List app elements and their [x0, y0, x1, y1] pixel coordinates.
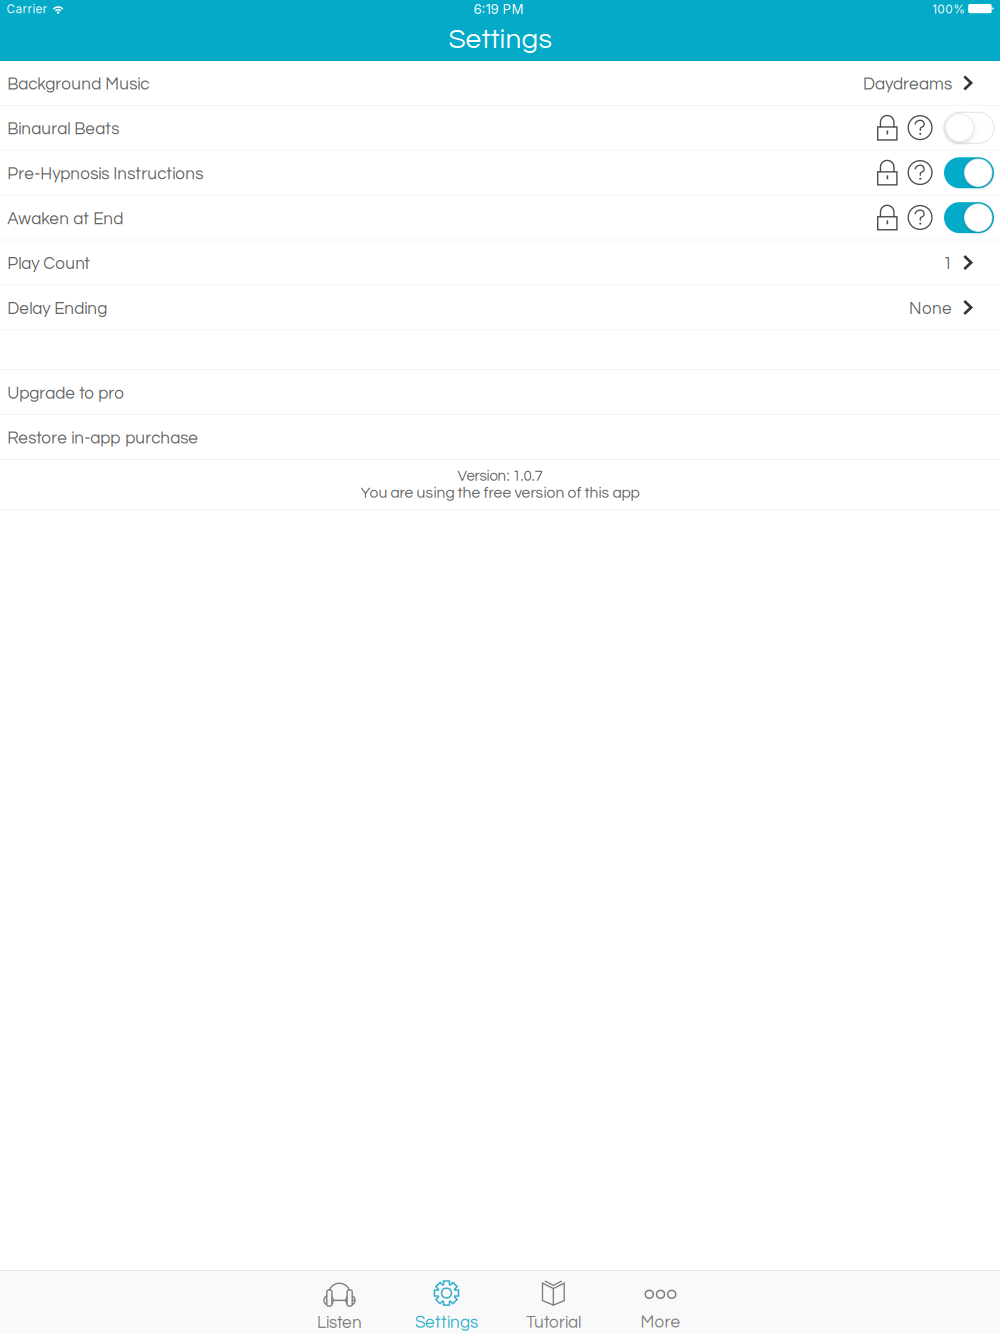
staticText: You are using the free version of this a… [360, 485, 639, 501]
staticText: 100% [932, 2, 965, 16]
staticText: Listen [317, 1314, 362, 1332]
staticText: Upgrade to pro [7, 385, 124, 402]
staticText: Background Music [7, 75, 149, 93]
staticText: None [909, 300, 952, 318]
staticText: Delay Ending [7, 300, 107, 318]
button[interactable]: Pro feature locked [877, 115, 898, 141]
staticText: Daydreams [863, 75, 952, 93]
staticText: Awaken at End [7, 210, 123, 228]
staticText: Pre-Hypnosis Instructions [7, 165, 203, 183]
button[interactable]: Settings [393, 1271, 500, 1334]
staticText: Tutorial [526, 1314, 581, 1331]
staticText: Binaural Beats [7, 120, 119, 138]
button[interactable]: More [607, 1271, 714, 1334]
staticText: Version: 1.0.7 [457, 468, 542, 484]
staticText: Settings [448, 25, 551, 54]
button[interactable]: Help [908, 160, 933, 185]
button[interactable]: Help [908, 115, 933, 141]
button[interactable]: Play Count [0, 241, 1000, 284]
button[interactable]: Delay Ending [0, 285, 1000, 329]
button[interactable]: Tutorial [500, 1271, 607, 1334]
button[interactable]: Background Music [0, 61, 1000, 105]
button[interactable]: Pre-Hypnosis Instructions [944, 157, 994, 188]
staticText: Settings [415, 1314, 478, 1331]
button[interactable]: Awaken at End [944, 202, 994, 233]
button[interactable]: Pro feature locked [877, 205, 898, 230]
staticText: 6:19 PM [473, 1, 523, 17]
staticText: Play Count [7, 255, 90, 273]
button[interactable]: Binaural Beats [944, 112, 994, 143]
button[interactable]: Pro feature locked [877, 160, 898, 186]
button[interactable]: Help [908, 205, 933, 230]
staticText: 1 [943, 255, 952, 273]
staticText: Restore in-app purchase [7, 430, 198, 447]
button[interactable]: Upgrade to pro [0, 370, 1000, 414]
button[interactable]: Listen [286, 1271, 393, 1334]
button[interactable]: Restore in-app purchase [0, 415, 1000, 459]
staticText: More [640, 1314, 680, 1331]
staticText: Carrier [6, 2, 46, 16]
